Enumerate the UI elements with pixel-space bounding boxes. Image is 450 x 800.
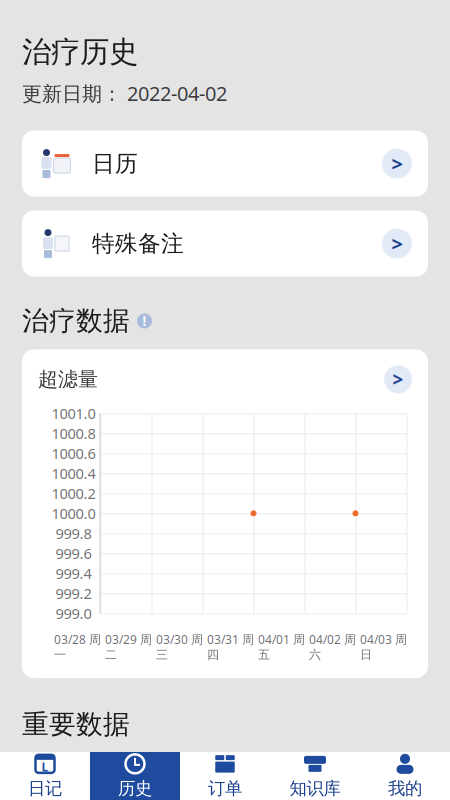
staticText: 999.4 [55, 564, 91, 583]
staticText: 1000.6 [51, 444, 95, 463]
staticText: 特殊备注 [92, 230, 184, 257]
staticText: 液体摄入量 [76, 771, 176, 796]
staticText: 1000.4 [51, 464, 95, 483]
staticText: 04/03 周日 [360, 631, 407, 662]
button[interactable]: 超滤量 [22, 349, 428, 393]
staticText: ! [142, 312, 146, 330]
staticText: 03/30 周三 [156, 631, 203, 662]
staticText: > [391, 230, 402, 257]
button[interactable]: 日历 [22, 131, 428, 197]
button[interactable]: 订单 [180, 752, 270, 800]
button[interactable]: 知识库 [270, 752, 360, 800]
staticText: 999.8 [55, 524, 91, 543]
staticText: 1000.2 [51, 484, 95, 503]
staticText: 更新日期： 2022-04-02 [22, 80, 227, 107]
staticText: > [394, 772, 404, 795]
staticText: 日记 [28, 778, 62, 799]
button[interactable]: 我的 [360, 752, 450, 800]
staticText: 历史 [118, 778, 152, 799]
staticText: L [41, 759, 48, 775]
staticText: > [392, 367, 403, 392]
staticText: 03/28 周一 [54, 631, 101, 662]
staticText: 1000.8 [51, 424, 95, 443]
button[interactable]: 历史 [90, 752, 180, 800]
staticText: 04/01 周五 [258, 631, 305, 662]
button[interactable]: 液体摄入量 [22, 753, 428, 800]
staticText: 我的 [388, 778, 422, 799]
staticText: > [391, 150, 402, 177]
staticText: 重要数据 [22, 708, 130, 741]
staticText: 知识库 [289, 778, 340, 799]
staticText: 999.6 [55, 544, 91, 563]
staticText: 999.0 [55, 604, 91, 623]
staticText: 治疗数据 [22, 305, 130, 337]
staticText: 03/29 周二 [105, 631, 152, 662]
button[interactable]: 说明 [137, 312, 152, 330]
button[interactable]: L [0, 752, 90, 800]
staticText: 03/31 周四 [207, 631, 254, 662]
staticText: 04/02 周六 [309, 631, 356, 662]
staticText: 日历 [92, 150, 138, 177]
staticText: 超滤量 [38, 367, 98, 392]
staticText: 治疗历史 [22, 34, 138, 70]
staticText: 1000.0 [51, 504, 95, 523]
button[interactable]: 特殊备注 [22, 211, 428, 277]
staticText: 999.2 [55, 584, 91, 603]
staticText: 1001.0 [51, 404, 95, 423]
staticText: 订单 [208, 778, 242, 799]
